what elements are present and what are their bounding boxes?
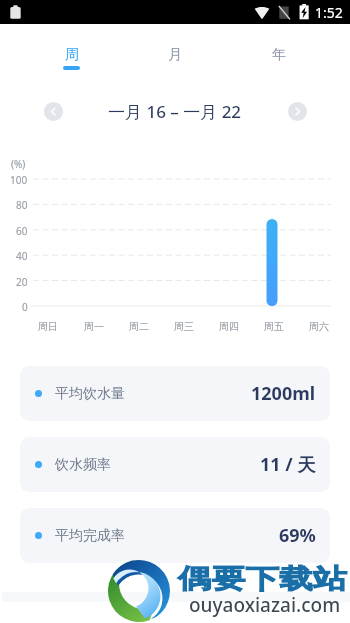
staticText: 平均完成率 [55, 527, 125, 545]
staticText: 20 [16, 275, 28, 289]
staticText: 周六 [309, 320, 329, 333]
staticText: 周二 [129, 320, 149, 333]
staticText: 饮水频率 [55, 456, 111, 474]
staticText: 60 [16, 224, 28, 238]
button[interactable]: 年 [253, 37, 305, 73]
staticText: 月 [168, 46, 182, 64]
button[interactable]: 周 [45, 37, 97, 73]
staticText: 1200ml [251, 381, 316, 406]
button[interactable]: 饮水频率 [20, 437, 330, 492]
staticText: 11 / 天 [260, 452, 316, 477]
staticText: ouyaoxiazai.com [189, 592, 341, 618]
staticText: 100 [10, 173, 28, 187]
staticText: (%) [11, 157, 26, 171]
button[interactable]: 平均饮水量 [20, 366, 330, 421]
staticText: 偶要下载站 [178, 562, 347, 596]
staticText: 69% [279, 523, 316, 548]
staticText: 平均饮水量 [55, 385, 125, 403]
staticText: 周五 [264, 320, 284, 333]
staticText: 0 [22, 300, 28, 314]
button[interactable]: Previous week [44, 102, 63, 121]
staticText: 周日 [38, 320, 58, 333]
staticText: 年 [272, 46, 286, 64]
button[interactable]: 平均完成率 [20, 508, 330, 563]
staticText: 40 [16, 249, 28, 263]
staticText: 一月 16 – 一月 22 [108, 100, 242, 123]
staticText: 周一 [84, 320, 104, 333]
staticText: 周四 [219, 320, 239, 333]
button[interactable]: Next week [288, 102, 307, 121]
staticText: 周三 [174, 320, 194, 333]
staticText: 周 [65, 46, 79, 64]
button[interactable]: 月 [149, 37, 201, 73]
staticText: 80 [16, 198, 28, 212]
staticText: 1:52 [315, 3, 343, 22]
